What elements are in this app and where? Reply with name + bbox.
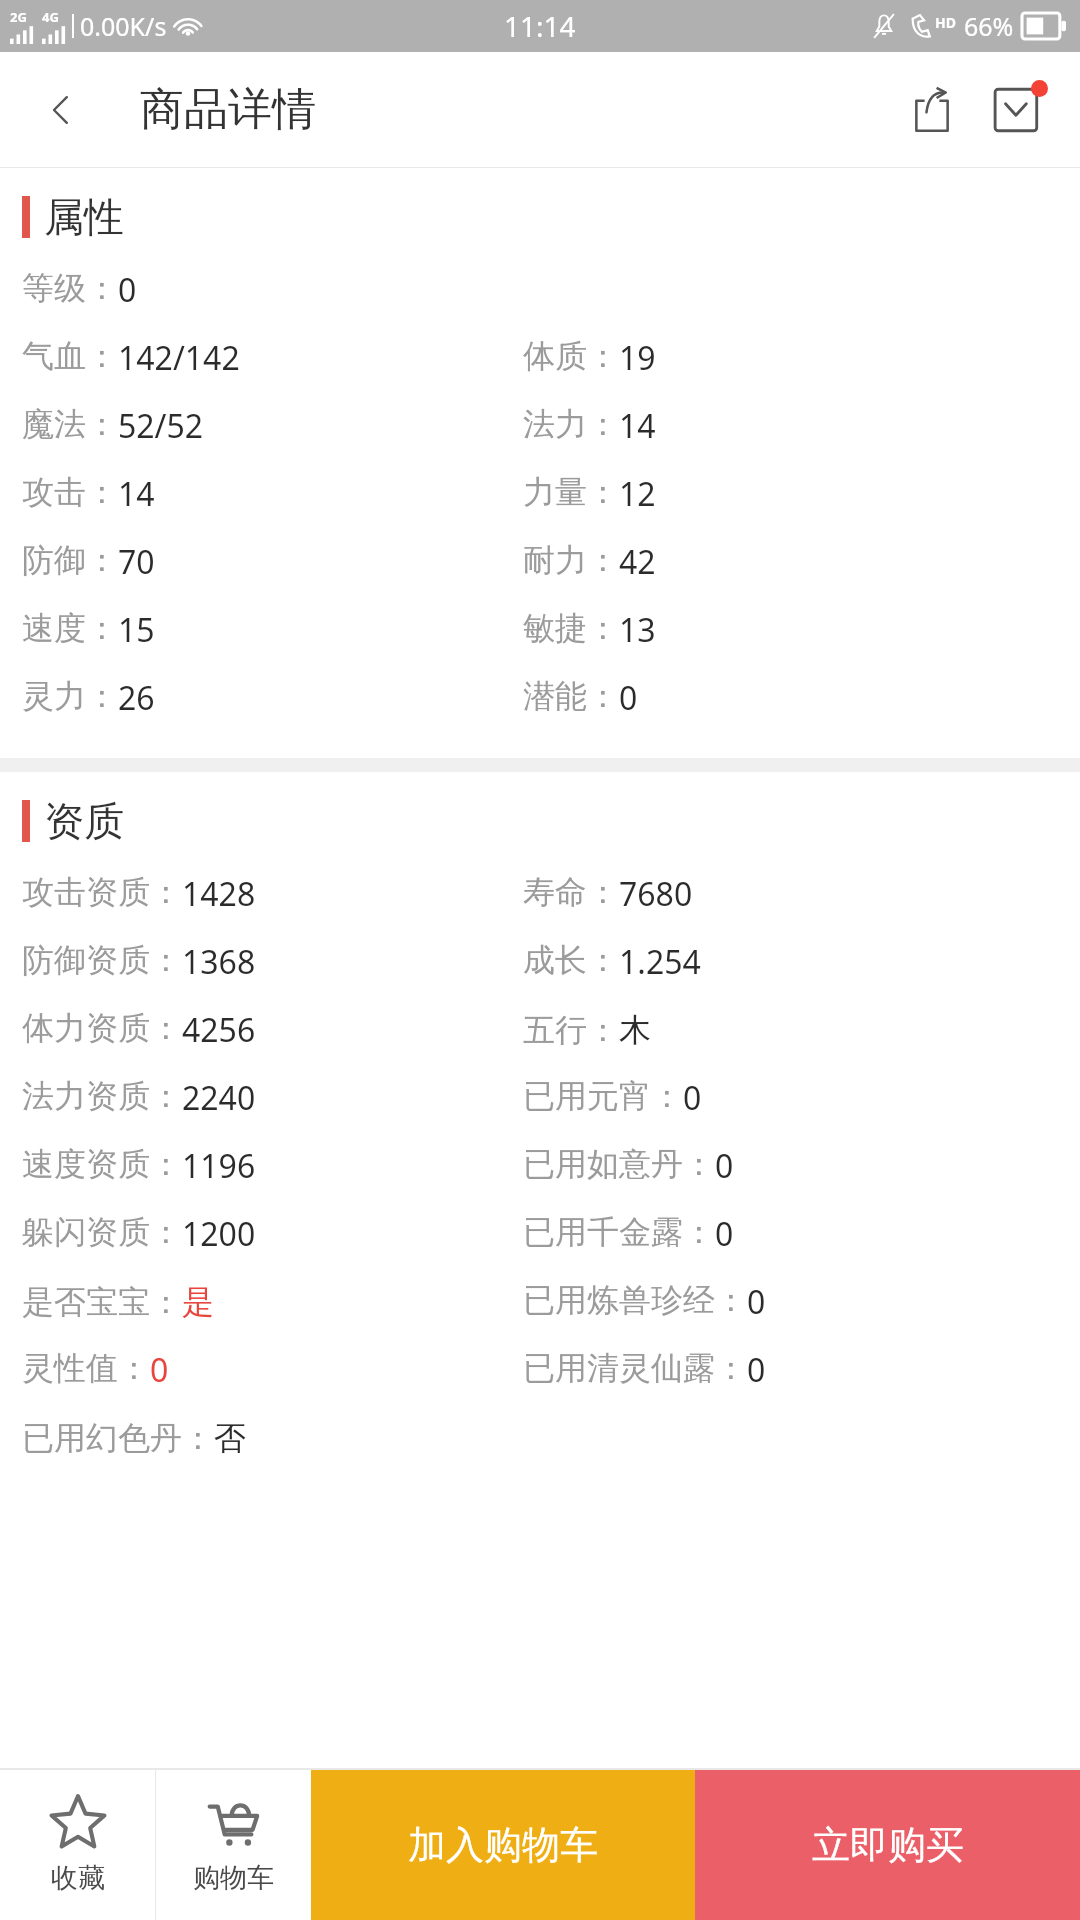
staticText: 气血： <box>22 336 118 376</box>
staticText: 收藏 <box>51 1861 105 1895</box>
staticText: 1196 <box>182 1144 256 1188</box>
staticText: 法力： <box>523 404 619 444</box>
staticText: 已用元宵： <box>523 1076 683 1116</box>
staticText: 1428 <box>182 872 256 916</box>
staticText: 购物车 <box>193 1861 274 1895</box>
staticText: 属性 <box>44 192 124 242</box>
staticText: 1200 <box>182 1212 256 1256</box>
staticText: 1368 <box>182 940 256 984</box>
staticText: 0.00K/s <box>80 9 167 43</box>
staticText: 0 <box>715 1212 734 1256</box>
staticText: 0 <box>683 1076 702 1120</box>
staticText: 攻击资质： <box>22 872 182 912</box>
staticText: 15 <box>118 608 155 652</box>
staticText: 4256 <box>182 1008 256 1052</box>
staticText: 商品详情 <box>140 82 316 137</box>
staticText: 0 <box>747 1348 766 1392</box>
staticText: 木 <box>619 1010 651 1050</box>
button[interactable]: 立即购买 <box>695 1770 1080 1920</box>
staticText: 19 <box>619 336 656 380</box>
staticText: 已用炼兽珍经： <box>523 1280 747 1320</box>
staticText: 已用幻色丹： <box>22 1418 214 1458</box>
staticText: 五行： <box>523 1010 619 1050</box>
staticText: 0 <box>715 1144 734 1188</box>
staticText: 体力资质： <box>22 1008 182 1048</box>
staticText: 0 <box>619 676 638 720</box>
staticText: 52/52 <box>118 404 204 448</box>
staticText: 70 <box>118 540 155 584</box>
staticText: 力量： <box>523 472 619 512</box>
staticText: 2G <box>10 8 27 26</box>
staticText: 防御资质： <box>22 940 182 980</box>
staticText: 等级： <box>22 268 118 308</box>
staticText: 速度： <box>22 608 118 648</box>
staticText: 0 <box>118 268 137 312</box>
button[interactable]: 加入购物车 <box>311 1770 695 1920</box>
staticText: 142/142 <box>118 336 240 380</box>
staticText: 耐力： <box>523 540 619 580</box>
staticText: 0 <box>747 1280 766 1324</box>
staticText: 66% <box>964 9 1014 43</box>
staticText: HD <box>935 13 956 32</box>
staticText: 否 <box>214 1418 246 1458</box>
staticText: 法力资质： <box>22 1076 182 1116</box>
staticText: 7680 <box>619 872 693 916</box>
staticText: 防御： <box>22 540 118 580</box>
staticText: 12 <box>619 472 656 516</box>
staticText: 加入购物车 <box>408 1821 598 1869</box>
staticText: 4G <box>42 8 59 26</box>
button[interactable]: 购物车 <box>156 1770 311 1920</box>
staticText: 已用千金露： <box>523 1212 715 1252</box>
staticText: 资质 <box>44 796 124 846</box>
button[interactable]: 收藏 <box>0 1770 155 1920</box>
staticText: 13 <box>619 608 656 652</box>
staticText: 1.254 <box>619 940 701 984</box>
staticText: 攻击： <box>22 472 118 512</box>
staticText: 魔法： <box>22 404 118 444</box>
staticText: 0 <box>150 1348 169 1392</box>
staticText: 体质： <box>523 336 619 376</box>
staticText: 灵性值： <box>22 1348 150 1388</box>
staticText: 14 <box>118 472 155 516</box>
staticText: 是否宝宝： <box>22 1282 182 1322</box>
staticText: 躲闪资质： <box>22 1212 182 1252</box>
staticText: 11:14 <box>504 7 576 45</box>
staticText: 潜能： <box>523 676 619 716</box>
staticText: 立即购买 <box>812 1821 964 1869</box>
staticText: 成长： <box>523 940 619 980</box>
staticText: 2240 <box>182 1076 256 1120</box>
staticText: 是 <box>182 1282 214 1322</box>
staticText: 42 <box>619 540 656 584</box>
staticText: 已用清灵仙露： <box>523 1348 747 1388</box>
button[interactable]: Share <box>896 74 968 146</box>
staticText: 已用如意丹： <box>523 1144 715 1184</box>
staticText: 速度资质： <box>22 1144 182 1184</box>
button[interactable]: Messages <box>982 74 1054 146</box>
staticText: 灵力： <box>22 676 118 716</box>
button[interactable]: Back <box>26 74 98 146</box>
staticText: 寿命： <box>523 872 619 912</box>
staticText: 敏捷： <box>523 608 619 648</box>
staticText: 14 <box>619 404 656 448</box>
staticText: 26 <box>118 676 155 720</box>
